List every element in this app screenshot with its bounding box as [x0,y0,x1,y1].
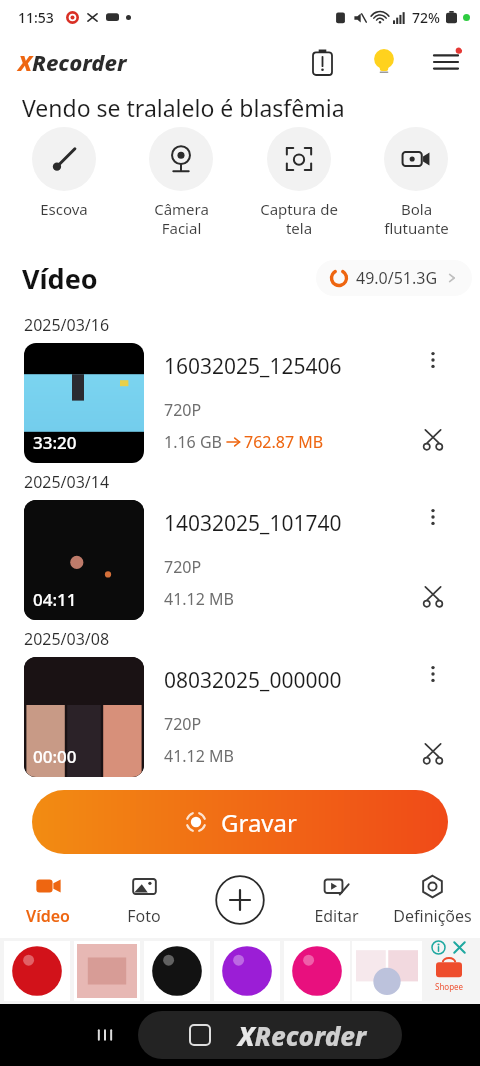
staticText: 11:53 [18,8,54,27]
button[interactable]: More options [413,497,453,537]
button[interactable] [214,941,280,1001]
button[interactable]: Escova [10,125,118,221]
staticText: XRecorder [18,47,127,77]
button[interactable]: Câmera Facial [127,125,235,240]
staticText: 1.16 GB [164,431,222,453]
staticText: Foto [127,905,161,927]
button[interactable]: Trim video [413,576,453,616]
staticText: 72% [412,8,440,27]
button[interactable]: Vídeo [0,862,96,938]
staticText: Bola flutuante [384,199,449,238]
button[interactable] [4,941,70,1001]
staticText: 2025/03/08 [24,628,110,650]
button[interactable]: 33:20 [0,340,480,465]
staticText: 14032025_101740 [164,509,342,538]
button[interactable]: Editar [288,862,384,938]
button[interactable]: Trim video [413,419,453,459]
staticText: Vídeo [26,905,70,927]
staticText: XRecorder [238,1018,367,1053]
staticText: 00:00 [33,745,77,768]
staticText: Vendo se tralalelo é blasfêmia [22,92,480,123]
button[interactable]: Captura de tela [245,125,353,240]
button[interactable]: More options [413,340,453,380]
button[interactable]: 49.0/51.3G [316,260,472,296]
button[interactable] [284,941,350,1001]
staticText: 49.0/51.3G [356,267,438,289]
staticText: 41.12 MB [164,745,234,767]
staticText: Vídeo [22,260,98,297]
staticText: Câmera Facial [154,199,209,238]
staticText: Shopee [435,981,464,992]
button[interactable] [74,941,140,1001]
staticText: 720P [164,399,202,421]
button[interactable]: Gravar [32,790,448,854]
staticText: Editar [314,905,359,927]
staticText: 04:11 [33,588,77,611]
staticText: Escova [40,199,88,219]
button[interactable]: Ad info [431,940,446,955]
staticText: 16032025_125406 [164,352,342,381]
staticText: Definições [393,905,472,927]
staticText: 720P [164,556,202,578]
button[interactable]: Bola flutuante [362,125,470,240]
staticText: 762.87 MB [244,431,324,453]
button[interactable]: Trim video [413,733,453,773]
button[interactable]: More options [413,654,453,694]
staticText: 33:20 [33,431,77,454]
button[interactable] [144,941,210,1001]
button[interactable]: 00:00 [0,654,480,779]
button[interactable]: Definições [384,862,480,938]
staticText: 2025/03/14 [24,471,110,493]
button[interactable]: Close ad [452,940,467,955]
staticText: 720P [164,713,202,735]
button[interactable]: Battery saver [302,42,342,82]
staticText: 08032025_000000 [164,666,342,695]
button[interactable]: Foto [96,862,192,938]
staticText: 2025/03/16 [24,314,110,336]
button[interactable]: Tips [364,42,404,82]
staticText: 41.12 MB [164,588,234,610]
button[interactable]: Menu [426,42,466,82]
button[interactable]: 04:11 [0,497,480,622]
button[interactable]: New recording [214,874,266,926]
staticText: Captura de tela [260,199,338,238]
staticText: Gravar [221,806,297,839]
